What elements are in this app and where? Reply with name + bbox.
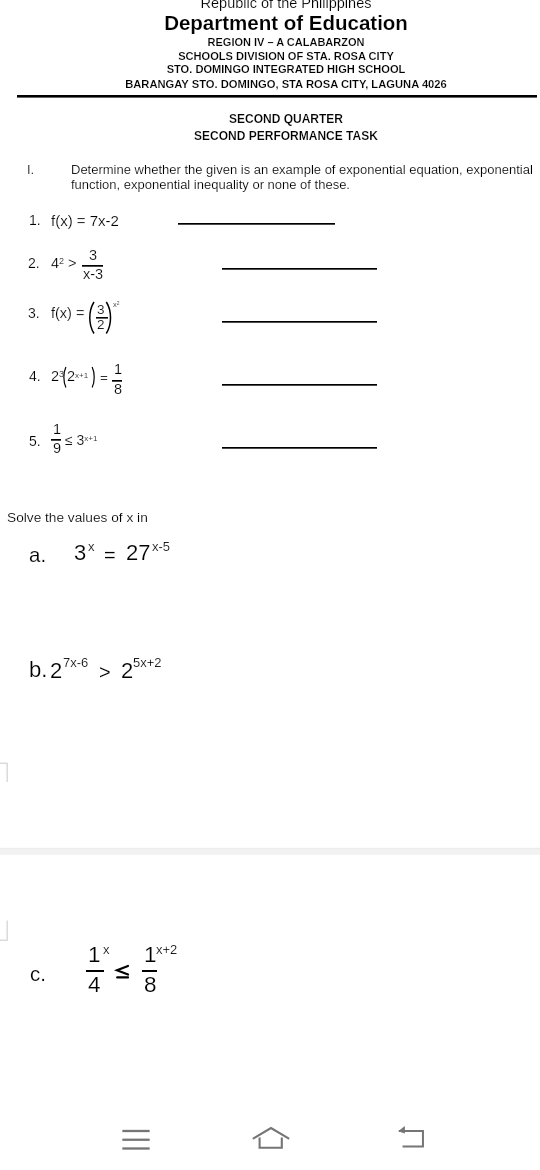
staticText: ≤ 3x+1 — [65, 432, 98, 448]
staticText: 42 > — [51, 255, 77, 271]
staticText: x+2 — [156, 942, 178, 957]
staticText: x — [88, 539, 95, 554]
staticText: 8 — [144, 972, 157, 997]
staticText: 8 — [114, 381, 123, 397]
staticText: a. — [29, 543, 47, 566]
staticText: 7x-6 — [63, 655, 89, 670]
staticText: SECOND QUARTER — [16, 112, 540, 125]
button[interactable]: Back — [343, 1108, 479, 1170]
staticText: 1 — [53, 421, 62, 437]
staticText: x2 — [113, 300, 120, 308]
staticText: STO. DOMINGO INTEGRATED HIGH SCHOOL — [16, 63, 540, 75]
staticText: REGION IV – A CALABARZON — [16, 36, 540, 48]
staticText: 5. — [29, 433, 41, 449]
staticText: Solve the values of x in — [7, 510, 148, 525]
staticText: Republic of the Philippines — [16, 0, 540, 11]
staticText: f(x) = 7x-2 — [51, 212, 119, 229]
staticText: BARANGAY STO. DOMINGO, STA ROSA CITY, LA… — [16, 78, 540, 91]
staticText: 3 — [74, 540, 87, 565]
staticText: 3. — [28, 305, 40, 321]
staticText: 1 — [144, 942, 157, 967]
staticText: c. — [30, 962, 46, 985]
staticText: 2 — [50, 658, 63, 683]
staticText: = — [104, 544, 116, 566]
button[interactable]: Home — [203, 1108, 339, 1170]
staticText: 4 — [88, 972, 101, 997]
staticText: 1 — [88, 942, 101, 967]
staticText: f(x) = — [51, 305, 85, 321]
staticText: 27 — [126, 540, 151, 565]
staticText: b. — [29, 657, 48, 682]
button[interactable]: Recent apps — [68, 1108, 204, 1170]
staticText: x — [103, 942, 110, 957]
staticText: 2x+1 — [67, 368, 89, 384]
staticText: 4. — [29, 368, 41, 384]
staticText: 1. — [29, 212, 41, 228]
staticText: x-5 — [152, 539, 171, 554]
staticText: 23 — [51, 368, 65, 384]
staticText: 9 — [53, 440, 62, 456]
staticText: SECOND PERFORMANCE TASK — [16, 129, 540, 142]
staticText: 3 — [97, 302, 105, 317]
staticText: I. — [27, 162, 35, 177]
staticText: > — [99, 661, 111, 683]
staticText: 5x+2 — [133, 655, 162, 670]
staticText: = — [100, 370, 108, 385]
staticText: Determine whether the given is an exampl… — [71, 162, 537, 192]
staticText: 2 — [121, 658, 134, 683]
staticText: 1 — [114, 361, 123, 377]
staticText: Department of Education — [16, 11, 540, 34]
staticText: 3 — [89, 247, 98, 263]
staticText: 2 — [97, 317, 105, 332]
staticText: x-3 — [83, 266, 104, 282]
staticText: 2. — [28, 255, 40, 271]
staticText: SCHOOLS DIVISION OF STA. ROSA CITY — [16, 50, 540, 62]
